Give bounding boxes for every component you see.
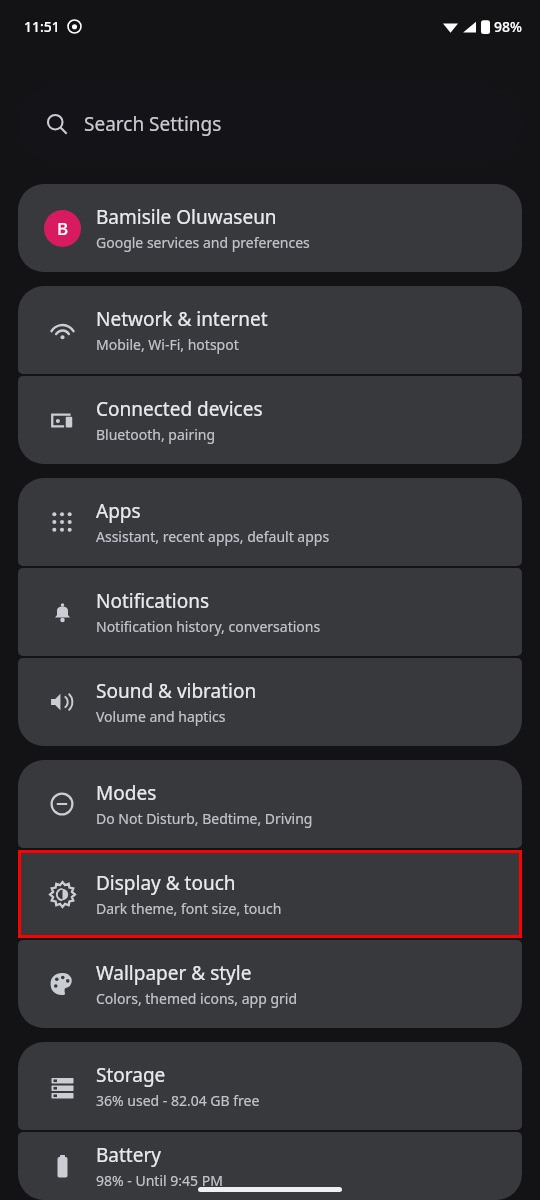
staticText: 98% bbox=[494, 17, 522, 36]
staticText: Storage bbox=[96, 1062, 166, 1088]
staticText: Volume and haptics bbox=[96, 707, 226, 726]
staticText: Notification history, conversations bbox=[96, 617, 321, 636]
staticText: Mobile, Wi-Fi, hotspot bbox=[96, 335, 239, 354]
button[interactable]: Network & internet bbox=[18, 286, 522, 374]
button[interactable]: Battery bbox=[18, 1132, 522, 1200]
staticText: B bbox=[57, 217, 69, 240]
staticText: 36% used - 82.04 GB free bbox=[96, 1091, 260, 1110]
staticText: 11:51 bbox=[24, 17, 60, 36]
staticText: Bluetooth, pairing bbox=[96, 425, 216, 444]
staticText: Display & touch bbox=[96, 870, 236, 896]
staticText: Wallpaper & style bbox=[96, 960, 252, 986]
button[interactable]: Wallpaper & style bbox=[18, 940, 522, 1028]
button[interactable]: Notifications bbox=[18, 568, 522, 656]
staticText: Bamisile Oluwaseun bbox=[96, 204, 277, 230]
staticText: 98% - Until 9:45 PM bbox=[96, 1171, 223, 1190]
staticText: Apps bbox=[96, 498, 141, 524]
button[interactable]: Display & touch bbox=[18, 850, 522, 938]
button[interactable]: Modes bbox=[18, 760, 522, 848]
staticText: Do Not Disturb, Bedtime, Driving bbox=[96, 809, 313, 828]
button[interactable]: Sound & vibration bbox=[18, 658, 522, 746]
button[interactable]: Apps bbox=[18, 478, 522, 566]
staticText: Modes bbox=[96, 780, 157, 806]
staticText: Google services and preferences bbox=[96, 233, 310, 252]
staticText: Battery bbox=[96, 1142, 161, 1168]
staticText: Network & internet bbox=[96, 306, 268, 332]
button[interactable]: B bbox=[18, 184, 522, 272]
staticText: Colors, themed icons, app grid bbox=[96, 989, 297, 1008]
staticText: Dark theme, font size, touch bbox=[96, 899, 282, 918]
staticText: Sound & vibration bbox=[96, 678, 257, 704]
staticText: Search Settings bbox=[84, 111, 222, 137]
button[interactable]: Connected devices bbox=[18, 376, 522, 464]
staticText: Connected devices bbox=[96, 396, 263, 422]
button[interactable]: Storage bbox=[18, 1042, 522, 1130]
button[interactable]: Search Settings bbox=[18, 86, 522, 162]
staticText: Notifications bbox=[96, 588, 210, 614]
staticText: Assistant, recent apps, default apps bbox=[96, 527, 330, 546]
